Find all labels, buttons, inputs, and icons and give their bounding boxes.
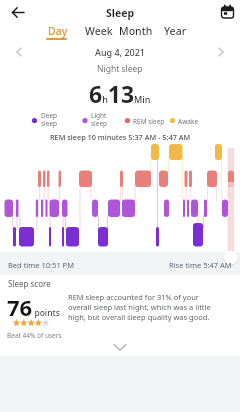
staticText: Bed time 10:51 PM [8, 260, 74, 270]
staticText: Sleep [106, 6, 135, 20]
button[interactable] [6, 2, 30, 22]
button[interactable]: Day [48, 24, 68, 42]
staticText: Night sleep [97, 63, 143, 75]
staticText: Month [119, 24, 153, 38]
staticText: REM sleep [133, 117, 165, 126]
button[interactable]: Month [119, 24, 153, 42]
button[interactable] [216, 2, 238, 22]
button[interactable]: 76 points [7, 292, 60, 322]
button[interactable] [212, 44, 230, 60]
staticText: Sleep score [8, 278, 51, 289]
staticText: Day [48, 24, 68, 38]
staticText: REM sleep 10 minutes 5:37 AM - 5:47 AM [50, 132, 191, 142]
staticText: 76 points [7, 292, 60, 322]
staticText: Aug 4, 2021 [95, 46, 145, 58]
staticText: Week [85, 24, 113, 38]
staticText: Year [164, 24, 187, 38]
staticText: Deep sleep [41, 111, 58, 128]
staticText: 6h13Min [89, 78, 151, 109]
staticText: Beat 44% of users [7, 331, 62, 340]
button[interactable] [10, 44, 28, 60]
staticText: Light sleep [91, 111, 108, 128]
staticText: REM sleep accounted for 31% of your over… [68, 292, 211, 322]
button[interactable]: Week [85, 24, 113, 42]
button[interactable] [104, 338, 136, 354]
button[interactable]: Year [164, 24, 187, 42]
staticText: Awake [178, 117, 199, 126]
staticText: Rise time 5:47 AM [169, 260, 232, 270]
